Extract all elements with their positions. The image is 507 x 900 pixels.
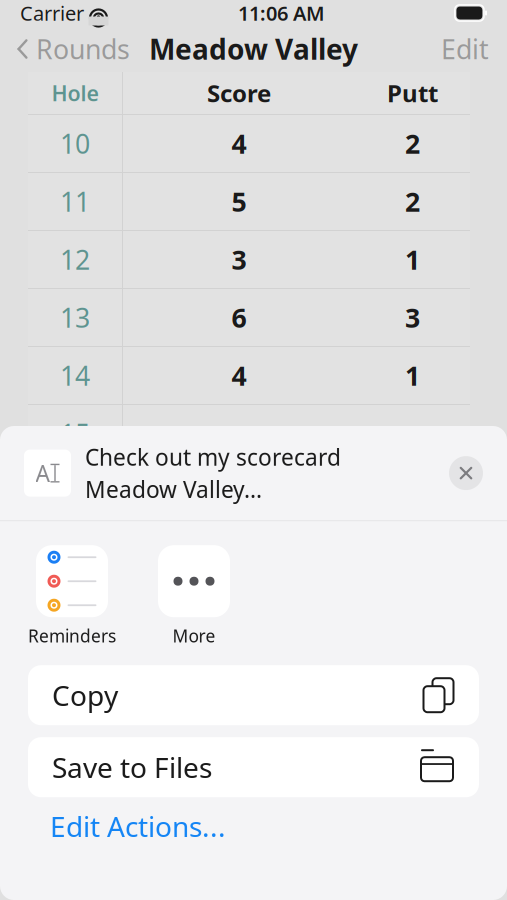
staticText: Edit Actions... bbox=[50, 808, 226, 845]
staticText: Meadow Valley... bbox=[85, 474, 262, 504]
staticText: A bbox=[35, 458, 49, 488]
button[interactable]: Copy bbox=[28, 665, 479, 725]
staticText: More bbox=[172, 624, 215, 647]
staticText: Reminders bbox=[28, 624, 116, 647]
staticText: 12 bbox=[60, 242, 90, 277]
staticText: 3 bbox=[405, 300, 420, 335]
staticText: 6 bbox=[231, 300, 246, 335]
button[interactable]: Close bbox=[449, 456, 483, 490]
staticText: Meadow Valley bbox=[149, 30, 358, 68]
button[interactable]: Save to Files bbox=[28, 737, 479, 797]
button[interactable]: Edit bbox=[423, 27, 507, 71]
staticText: Copy bbox=[52, 677, 118, 714]
staticText: 11:06 AM bbox=[238, 0, 325, 26]
staticText: 4 bbox=[231, 358, 246, 393]
staticText: Rounds bbox=[36, 31, 130, 67]
staticText: 2 bbox=[405, 126, 420, 161]
staticText: 4 bbox=[231, 126, 246, 161]
staticText: 11 bbox=[60, 184, 90, 219]
staticText: 5 bbox=[231, 184, 246, 219]
button[interactable]: Edit Actions... bbox=[0, 797, 507, 855]
button[interactable]: More bbox=[158, 545, 230, 647]
staticText: 15 bbox=[60, 416, 90, 451]
staticText: 1 bbox=[405, 358, 420, 393]
staticText: 10 bbox=[60, 126, 90, 161]
button[interactable]: Reminders bbox=[28, 545, 116, 647]
staticText: 14 bbox=[60, 358, 90, 393]
staticText: Hole bbox=[51, 79, 98, 107]
staticText: Score bbox=[207, 77, 271, 109]
staticText: Putt bbox=[387, 77, 438, 109]
staticText: Carrier bbox=[20, 0, 84, 26]
staticText: Check out my scorecard bbox=[85, 442, 341, 472]
staticText: 1 bbox=[405, 242, 420, 277]
staticText: 3 bbox=[231, 242, 246, 277]
staticText: Edit bbox=[441, 31, 489, 67]
staticText: Save to Files bbox=[52, 749, 212, 786]
staticText: 2 bbox=[405, 184, 420, 219]
staticText: 13 bbox=[60, 300, 90, 335]
button[interactable]: Rounds bbox=[0, 27, 146, 71]
